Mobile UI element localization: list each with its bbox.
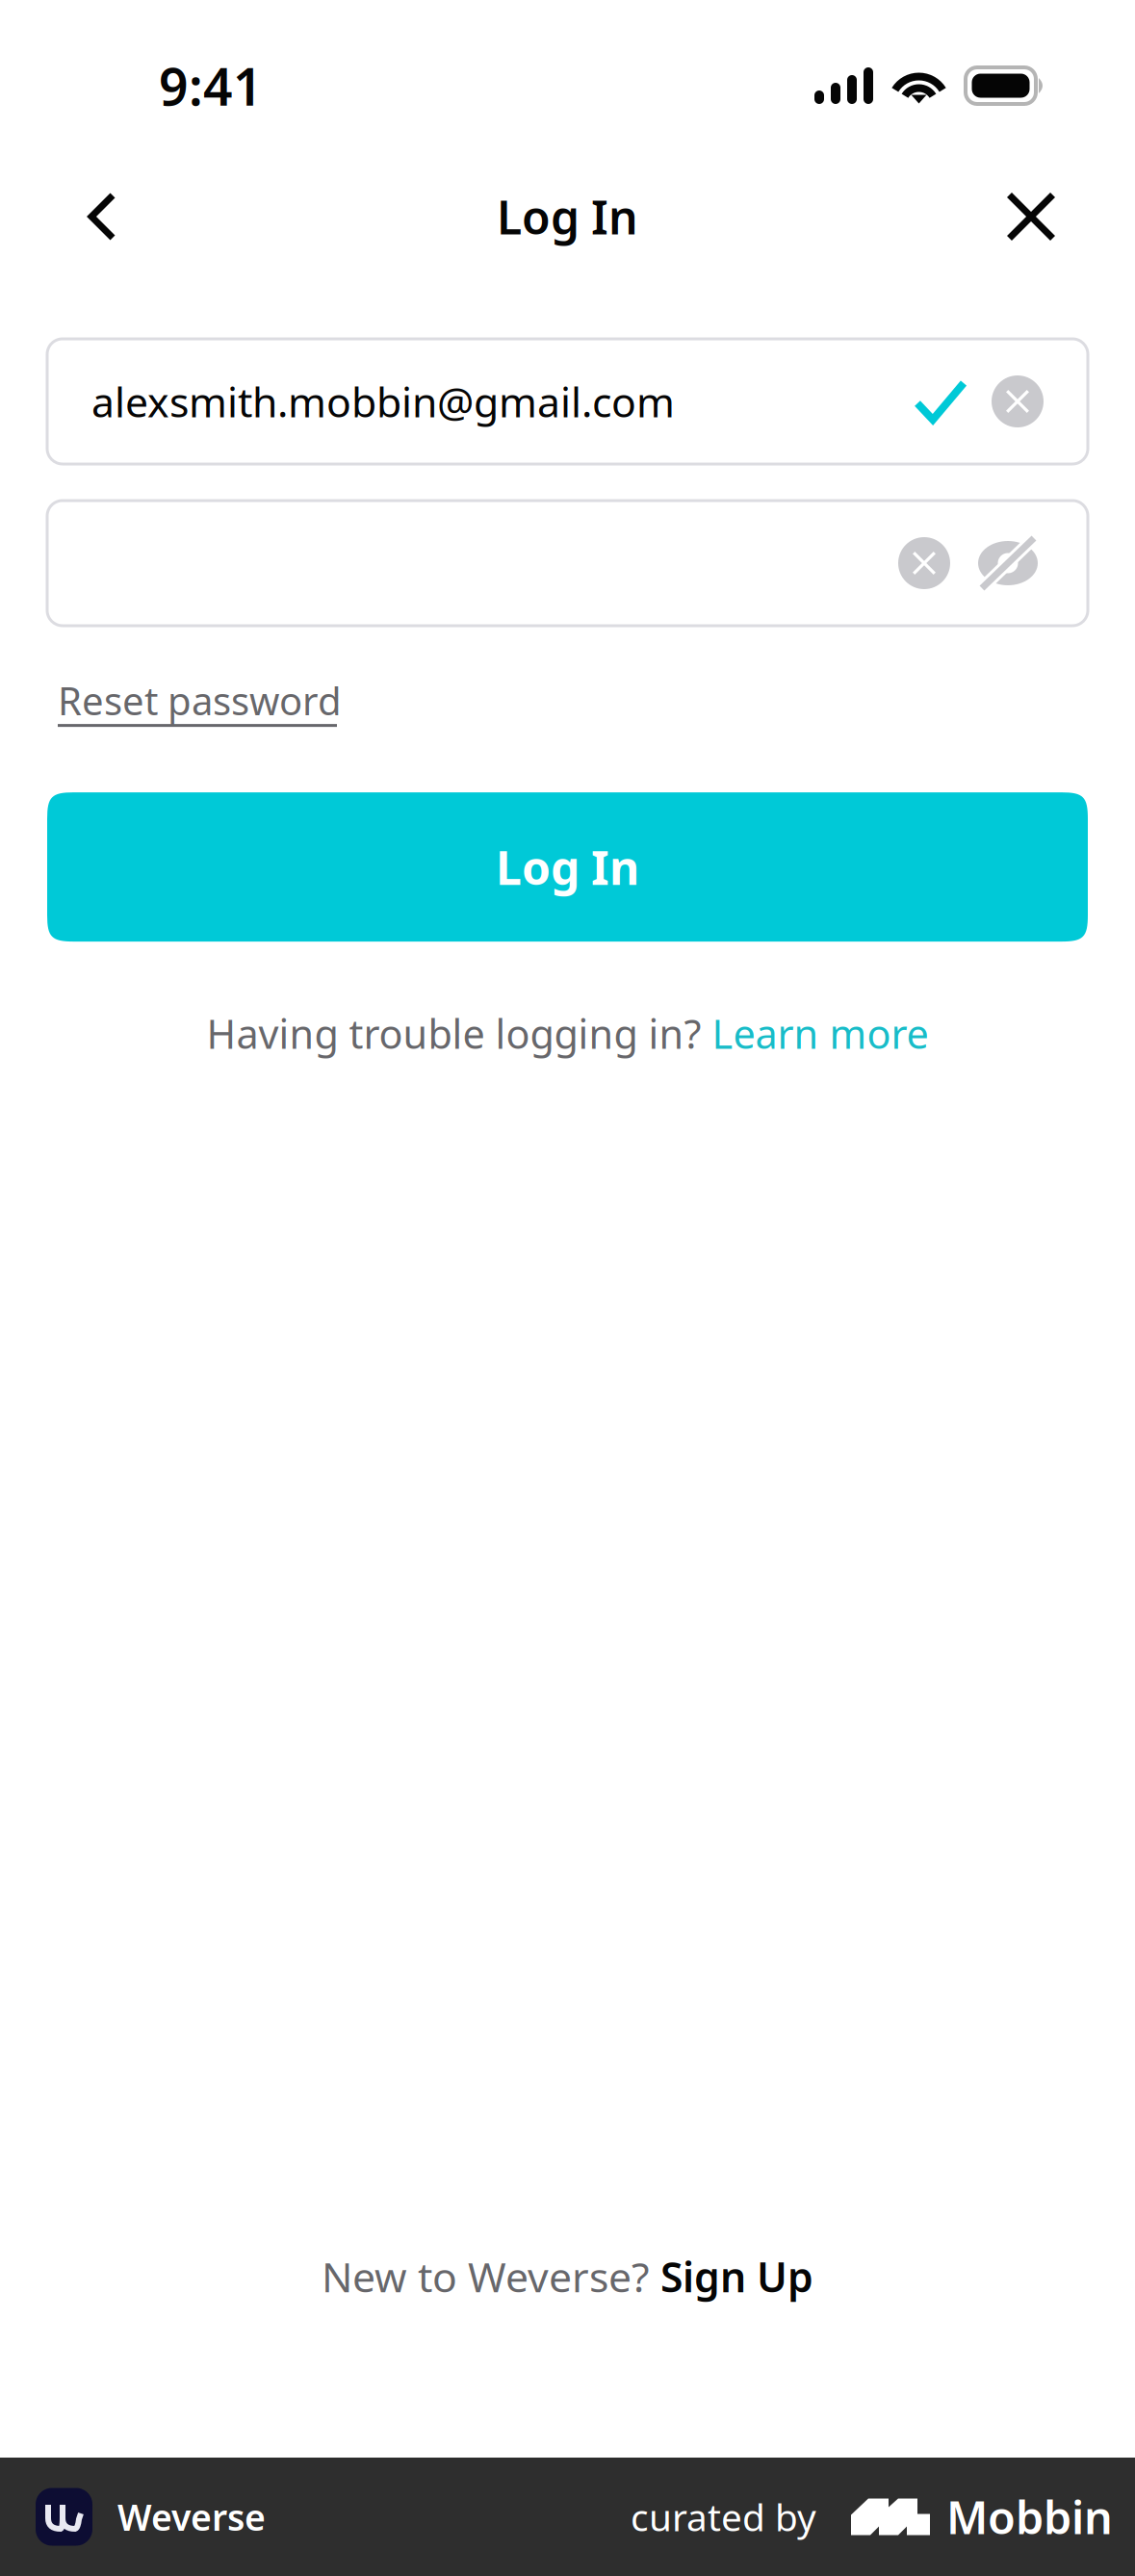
button[interactable]: Password [47,501,1088,626]
staticText: Reset password [58,675,342,726]
button[interactable]: Log In [47,792,1088,942]
staticText: 9:41 [159,52,263,120]
staticText: curated by [631,2492,816,2541]
button[interactable]: Sign Up [650,2249,813,2304]
button[interactable]: Reset password [47,675,342,727]
staticText: Sign Up [660,2249,813,2304]
button[interactable]: Learn more [701,1007,929,1060]
button[interactable]: Close [985,170,1077,263]
staticText: Mobbin [946,2487,1113,2547]
staticText: Weverse [117,2493,266,2541]
staticText: Log In [496,836,639,898]
staticText: Having trouble logging in? [206,1007,701,1060]
staticText: alexsmith.mobbin@gmail.com [91,374,675,429]
staticText: Learn more [712,1007,929,1060]
staticText: Log In [497,186,638,247]
button[interactable]: Back [56,170,148,263]
staticText: New to Weverse? [322,2249,650,2304]
button[interactable]: Email, alexsmith.mobbin@gmail.com [47,339,1088,464]
